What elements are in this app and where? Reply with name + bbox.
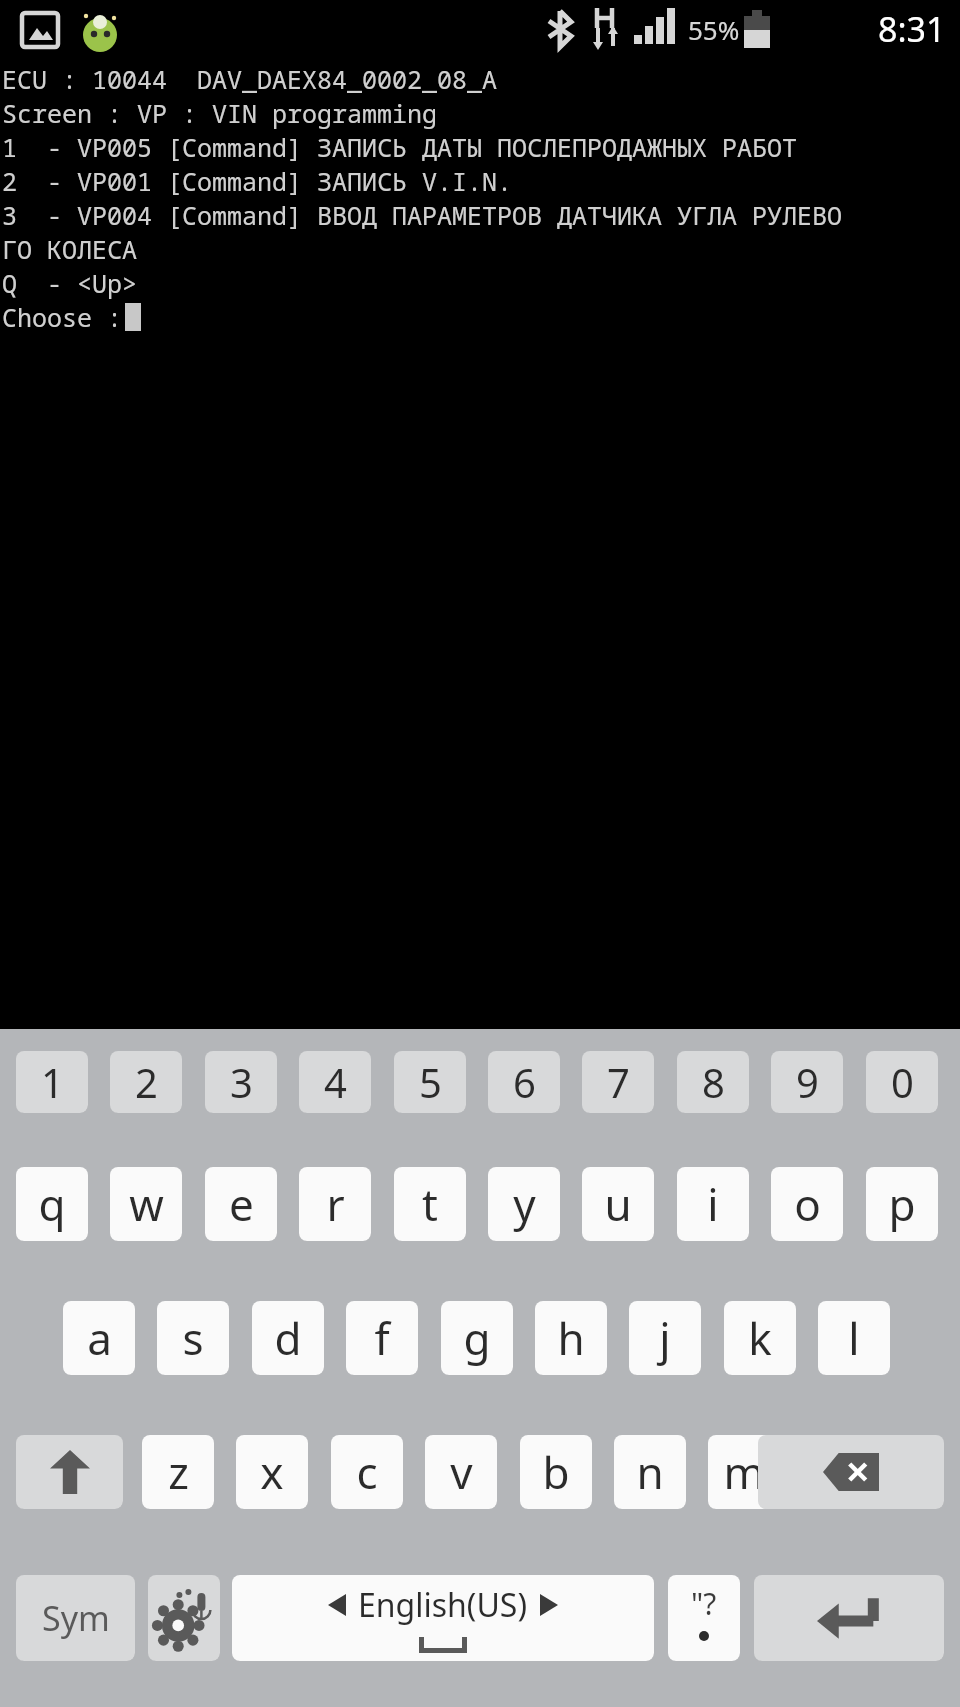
staticText: t xyxy=(422,1174,438,1234)
button[interactable]: f xyxy=(346,1301,418,1375)
button[interactable]: p xyxy=(866,1167,938,1241)
button[interactable]: Space xyxy=(232,1575,654,1661)
button[interactable]: w xyxy=(110,1167,182,1241)
staticText: 3 xyxy=(230,1055,253,1109)
staticText: 4 xyxy=(324,1055,347,1109)
button[interactable]: j xyxy=(629,1301,701,1375)
staticText: b xyxy=(542,1442,570,1502)
staticText: 1 xyxy=(41,1055,64,1109)
staticText: 5 xyxy=(419,1055,442,1109)
staticText: Sym xyxy=(42,1595,110,1641)
staticText: 2 - VP001 [Command] ЗАПИСЬ V.I.N. xyxy=(2,164,513,198)
button[interactable]: g xyxy=(441,1301,513,1375)
staticText: 6 xyxy=(513,1055,536,1109)
button[interactable]: 3 xyxy=(205,1051,277,1113)
button[interactable]: 5 xyxy=(394,1051,466,1113)
button[interactable]: 6 xyxy=(488,1051,560,1113)
staticText: Screen : VP : VIN programming xyxy=(2,96,438,130)
button[interactable]: h xyxy=(535,1301,607,1375)
button[interactable]: m xyxy=(708,1435,780,1509)
staticText: i xyxy=(707,1174,719,1234)
staticText: 0 xyxy=(891,1055,914,1109)
staticText: r xyxy=(326,1174,345,1234)
staticText: 9 xyxy=(796,1055,819,1109)
button[interactable]: t xyxy=(394,1167,466,1241)
button[interactable]: l xyxy=(818,1301,890,1375)
staticText: p xyxy=(888,1174,916,1234)
button[interactable]: Symbols xyxy=(16,1575,135,1661)
button[interactable]: 2 xyxy=(110,1051,182,1113)
button[interactable]: Voice input settings xyxy=(148,1575,220,1661)
staticText: 1 - VP005 [Command] ЗАПИСЬ ДАТЫ ПОСЛЕПРО… xyxy=(2,130,798,164)
button[interactable]: Backspace xyxy=(758,1435,944,1509)
button[interactable]: 9 xyxy=(771,1051,843,1113)
button[interactable]: o xyxy=(771,1167,843,1241)
staticText: j xyxy=(659,1308,671,1368)
button[interactable]: 0 xyxy=(866,1051,938,1113)
staticText: Q - <Up> xyxy=(2,266,138,300)
button[interactable]: y xyxy=(488,1167,560,1241)
staticText: s xyxy=(182,1308,204,1368)
staticText: w xyxy=(129,1174,164,1234)
staticText: 3 - VP004 [Command] ВВОД ПАРАМЕТРОВ ДАТЧ… xyxy=(2,198,843,232)
staticText: c xyxy=(356,1442,378,1502)
button[interactable]: Punctuation xyxy=(668,1575,740,1661)
button[interactable]: x xyxy=(236,1435,308,1509)
staticText: o xyxy=(794,1174,821,1234)
staticText: h xyxy=(557,1308,585,1368)
staticText: "? xyxy=(691,1583,717,1624)
button[interactable]: s xyxy=(157,1301,229,1375)
staticText: x xyxy=(260,1442,284,1502)
staticText: English(US) xyxy=(358,1583,528,1627)
staticText: v xyxy=(450,1442,473,1502)
button[interactable]: d xyxy=(252,1301,324,1375)
staticText: 8:31 xyxy=(878,6,946,52)
button[interactable]: 7 xyxy=(582,1051,654,1113)
staticText: f xyxy=(374,1308,390,1368)
button[interactable]: 4 xyxy=(299,1051,371,1113)
staticText: k xyxy=(748,1308,772,1368)
button[interactable]: k xyxy=(724,1301,796,1375)
staticText: y xyxy=(513,1174,536,1234)
button[interactable]: i xyxy=(677,1167,749,1241)
button[interactable]: Enter xyxy=(754,1575,944,1661)
staticText: l xyxy=(848,1308,860,1368)
button[interactable]: q xyxy=(16,1167,88,1241)
button[interactable]: r xyxy=(299,1167,371,1241)
staticText: q xyxy=(38,1174,66,1234)
staticText: ECU : 10044 DAV_DAEX84_0002_08_A xyxy=(2,62,498,96)
staticText: m xyxy=(723,1442,765,1502)
staticText: n xyxy=(636,1442,664,1502)
button[interactable]: u xyxy=(582,1167,654,1241)
button[interactable]: c xyxy=(331,1435,403,1509)
staticText: Choose : xyxy=(2,300,123,334)
staticText: g xyxy=(463,1308,491,1368)
button[interactable]: Shift xyxy=(16,1435,123,1509)
button[interactable]: 8 xyxy=(677,1051,749,1113)
staticText: a xyxy=(87,1308,112,1368)
staticText: 7 xyxy=(607,1055,630,1109)
button[interactable]: a xyxy=(63,1301,135,1375)
staticText: u xyxy=(604,1174,632,1234)
button[interactable]: n xyxy=(614,1435,686,1509)
button[interactable]: z xyxy=(142,1435,214,1509)
staticText: 8 xyxy=(702,1055,725,1109)
button[interactable]: e xyxy=(205,1167,277,1241)
staticText: e xyxy=(229,1174,254,1234)
button[interactable]: v xyxy=(425,1435,497,1509)
staticText: 55% xyxy=(688,12,740,47)
staticText: 2 xyxy=(135,1055,158,1109)
button[interactable]: 1 xyxy=(16,1051,88,1113)
staticText: d xyxy=(274,1308,302,1368)
staticText: ГО КОЛЕСА xyxy=(2,232,138,266)
button[interactable]: b xyxy=(520,1435,592,1509)
staticText: z xyxy=(168,1442,189,1502)
